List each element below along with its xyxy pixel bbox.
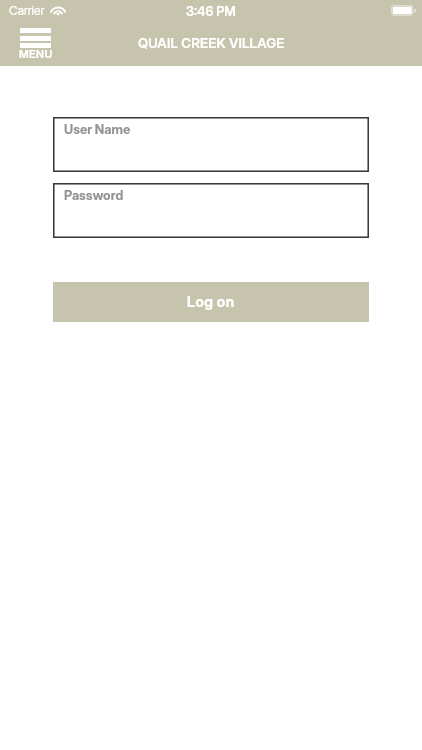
staticText: Carrier <box>9 3 45 18</box>
button[interactable]: Menu <box>20 24 60 60</box>
staticText: User Name <box>64 121 131 137</box>
staticText: 3:46 PM <box>186 3 236 19</box>
staticText: MENU <box>19 47 53 60</box>
staticText: Log on <box>187 293 235 311</box>
button[interactable]: Password <box>53 183 369 238</box>
staticText: QUAIL CREEK VILLAGE <box>138 35 285 51</box>
button[interactable]: Log on <box>53 282 369 322</box>
button[interactable]: User Name <box>53 117 369 172</box>
staticText: Password <box>64 187 124 203</box>
